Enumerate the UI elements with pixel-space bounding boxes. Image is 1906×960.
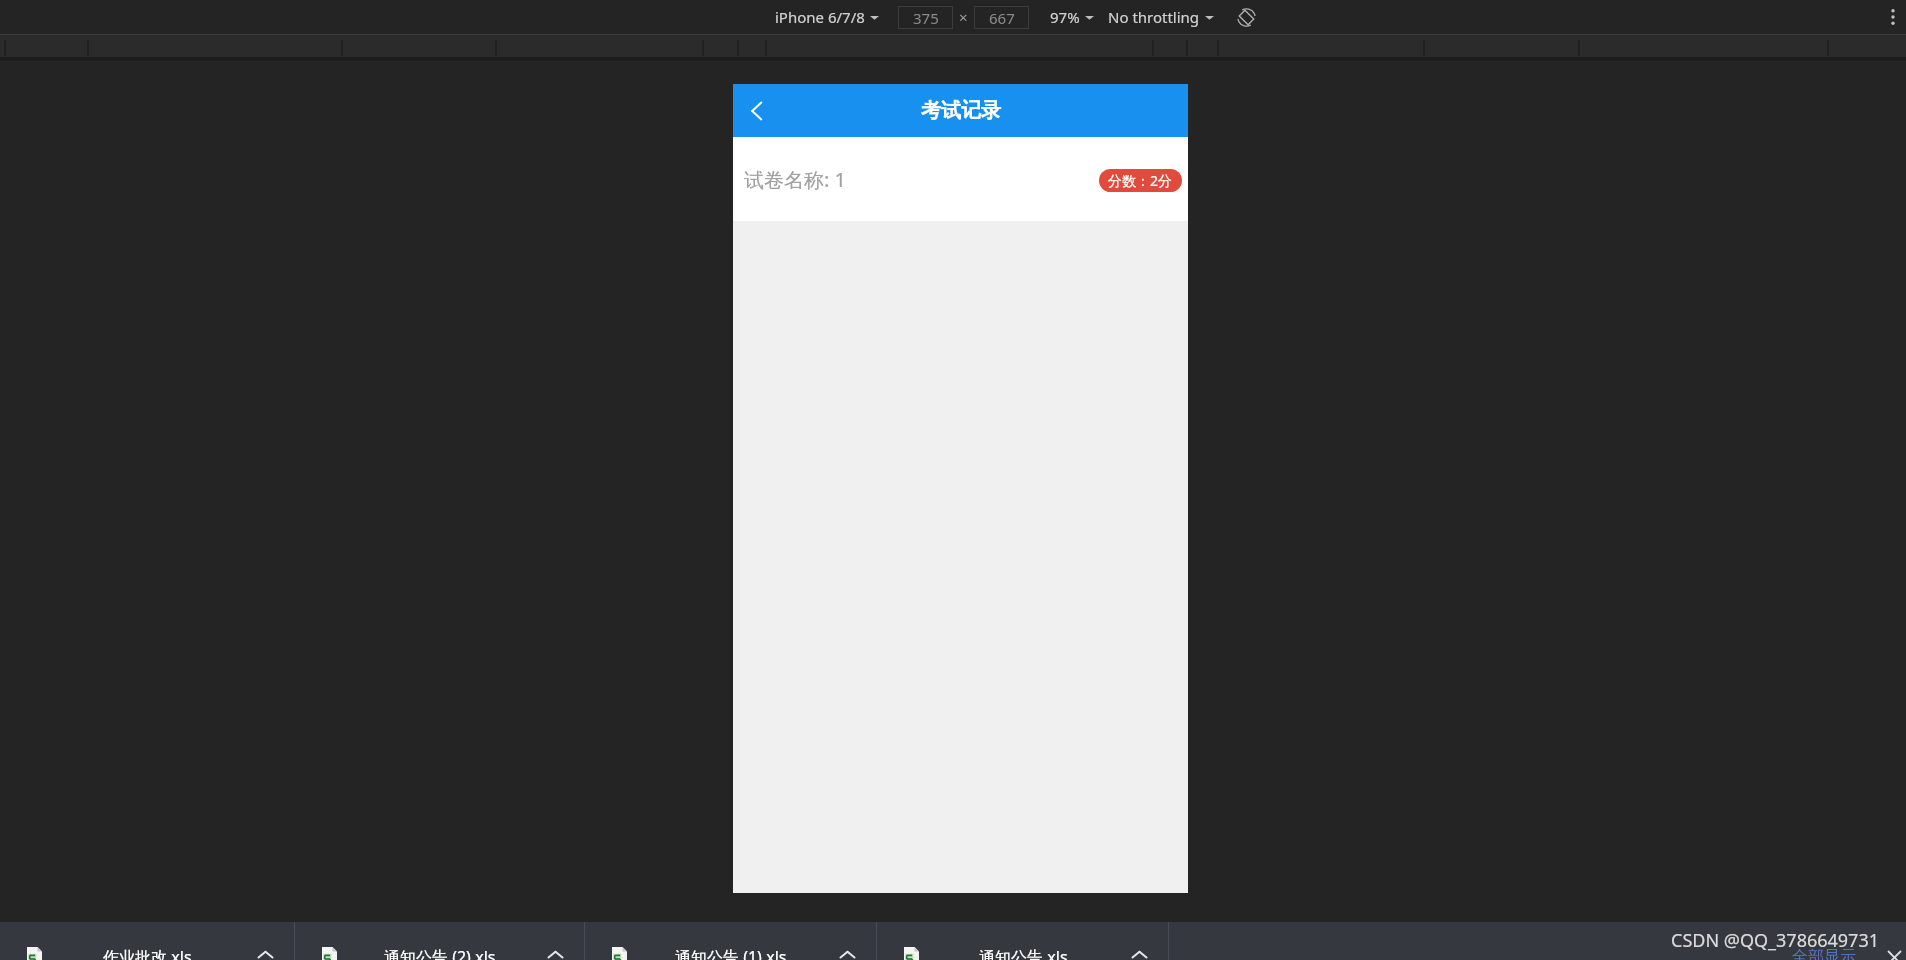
staticText: ×: [959, 7, 968, 27]
button[interactable]: 通知公告 (1).xls: [585, 922, 877, 960]
button[interactable]: More options: [1882, 6, 1904, 28]
button[interactable]: Back: [733, 84, 781, 137]
staticText: 667: [989, 8, 1015, 28]
button[interactable]: 通知公告.xls: [877, 922, 1169, 960]
staticText: iPhone 6/7/8: [775, 7, 865, 27]
staticText: 考试记录: [921, 98, 1001, 123]
button[interactable]: 作业批改.xls: [0, 922, 295, 960]
button[interactable]: 试卷名称: 1: [733, 137, 1188, 221]
staticText: 通知公告 (1).xls: [675, 946, 787, 960]
staticText: 作业批改.xls: [103, 946, 192, 960]
button[interactable]: Rotate: [1234, 5, 1258, 29]
staticText: No throttling: [1108, 7, 1200, 27]
staticText: 375: [913, 8, 939, 28]
staticText: 分数：2分: [1108, 171, 1173, 190]
staticText: 通知公告.xls: [979, 946, 1068, 960]
button[interactable]: iPhone 6/7/8: [775, 7, 879, 27]
button[interactable]: Show menu: [1130, 945, 1148, 960]
staticText: 97%: [1050, 7, 1080, 27]
staticText: 通知公告 (2).xls: [384, 946, 496, 960]
button[interactable]: Close: [1884, 947, 1904, 960]
button[interactable]: 全部显示: [1788, 943, 1860, 960]
staticText: CSDN @QQ_3786649731: [1671, 928, 1880, 953]
button[interactable]: No throttling: [1108, 7, 1214, 27]
button[interactable]: 375: [898, 6, 953, 29]
button[interactable]: Show menu: [546, 945, 564, 960]
button[interactable]: Show menu: [256, 945, 274, 960]
button[interactable]: Show menu: [838, 945, 856, 960]
button[interactable]: 667: [974, 6, 1029, 29]
staticText: 试卷名称: 1: [744, 166, 846, 193]
button[interactable]: 97%: [1050, 7, 1094, 27]
button[interactable]: 通知公告 (2).xls: [295, 922, 585, 960]
